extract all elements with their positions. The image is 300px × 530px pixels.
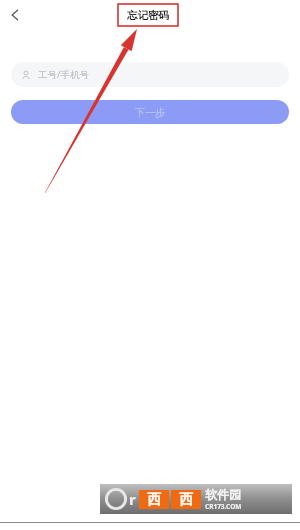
button[interactable]: Back xyxy=(0,0,30,30)
staticText: 工号/手机号 xyxy=(38,68,90,81)
staticText: 软件园 xyxy=(205,487,241,502)
staticText: 忘记密码 xyxy=(127,9,169,22)
staticText: r xyxy=(129,489,136,509)
staticText: 下一步 xyxy=(135,106,165,119)
staticText: 西 xyxy=(147,491,161,509)
button[interactable]: 工号/手机号 xyxy=(11,62,289,87)
button[interactable]: 下一步 xyxy=(11,100,289,124)
staticText: 西 xyxy=(179,491,193,509)
staticText: CR173.COM xyxy=(205,502,242,511)
